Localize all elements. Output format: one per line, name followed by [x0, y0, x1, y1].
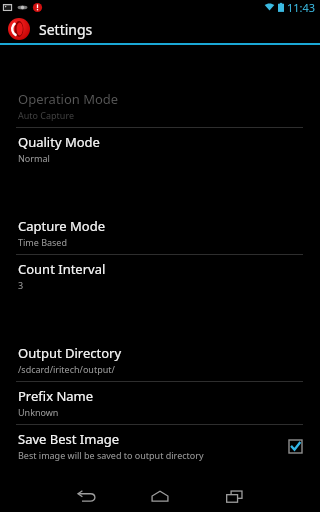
button[interactable]: Prefix Name: [0, 382, 320, 424]
button[interactable]: Save Best Image: [0, 425, 320, 467]
button[interactable]: App logo, navigate up: [7, 17, 31, 41]
staticText: Auto Capture: [18, 109, 75, 121]
button[interactable]: Capture Mode: [0, 212, 320, 254]
staticText: Save Best Image: [18, 430, 120, 448]
button[interactable]: Home: [123, 480, 197, 512]
staticText: /sdcard/iritech/output/: [18, 363, 115, 375]
staticText: Operation Mode: [18, 90, 119, 108]
staticText: Output Directory: [18, 344, 122, 362]
staticText: 11:43: [287, 0, 316, 15]
staticText: Unknown: [18, 406, 59, 418]
button[interactable]: Quality Mode: [0, 128, 320, 170]
button[interactable]: Output Directory: [0, 339, 320, 381]
staticText: Prefix Name: [18, 387, 94, 405]
staticText: 3: [18, 279, 24, 291]
button[interactable]: Back: [49, 480, 123, 512]
button[interactable]: Recent apps: [197, 480, 271, 512]
staticText: Quality Mode: [18, 133, 100, 151]
staticText: Settings: [39, 20, 93, 39]
button[interactable]: Check Deduplication: [0, 496, 320, 512]
staticText: Check Deduplication: [18, 501, 144, 506]
staticText: Best image will be saved to output direc…: [18, 449, 204, 461]
staticText: Count Interval: [18, 260, 106, 278]
staticText: Normal: [18, 152, 50, 164]
button[interactable]: Operation Mode: [0, 85, 320, 127]
button[interactable]: Count Interval: [0, 255, 320, 297]
staticText: Capture Mode: [18, 217, 106, 235]
staticText: Time Based: [18, 236, 67, 248]
button[interactable]: Save Best Image checkbox: [284, 435, 306, 457]
